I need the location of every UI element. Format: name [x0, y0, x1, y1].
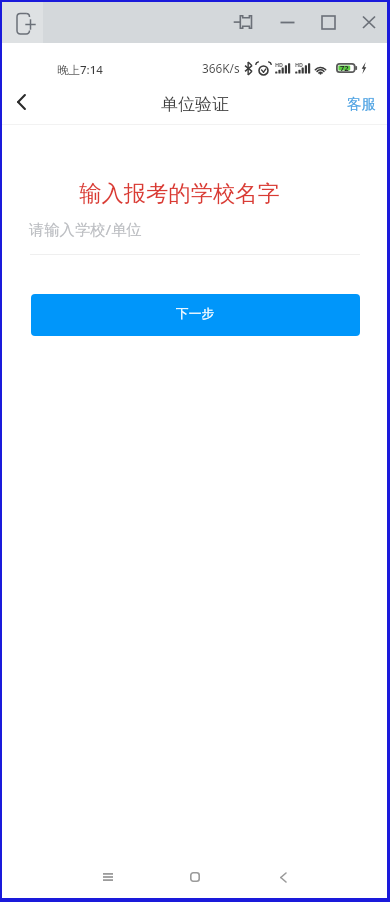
staticText: 晚上7:14	[57, 62, 103, 78]
button[interactable]: 客服	[346, 84, 375, 124]
button[interactable]: Back	[255, 855, 311, 899]
button[interactable]: 下一步	[31, 294, 360, 336]
staticText: 输入报考的学校名字	[0, 180, 372, 208]
staticText: 请输入学校/单位	[29, 219, 142, 240]
staticText: HD	[295, 61, 304, 68]
staticText: 单位验证	[161, 94, 229, 115]
button[interactable]: New window	[2, 2, 43, 43]
button[interactable]: Pin window	[228, 2, 263, 43]
button[interactable]: Recent apps	[80, 855, 136, 899]
staticText: 72	[340, 63, 349, 73]
button[interactable]: Close	[351, 2, 386, 43]
button[interactable]: Back	[2, 84, 42, 124]
button[interactable]: Home	[167, 855, 223, 899]
button[interactable]: Minimize	[270, 2, 305, 43]
button[interactable]: Maximize	[311, 2, 346, 43]
staticText: 下一步	[176, 306, 215, 322]
staticText: HD	[275, 61, 284, 68]
staticText: 366K/s	[202, 60, 240, 76]
staticText: 客服	[347, 95, 376, 113]
